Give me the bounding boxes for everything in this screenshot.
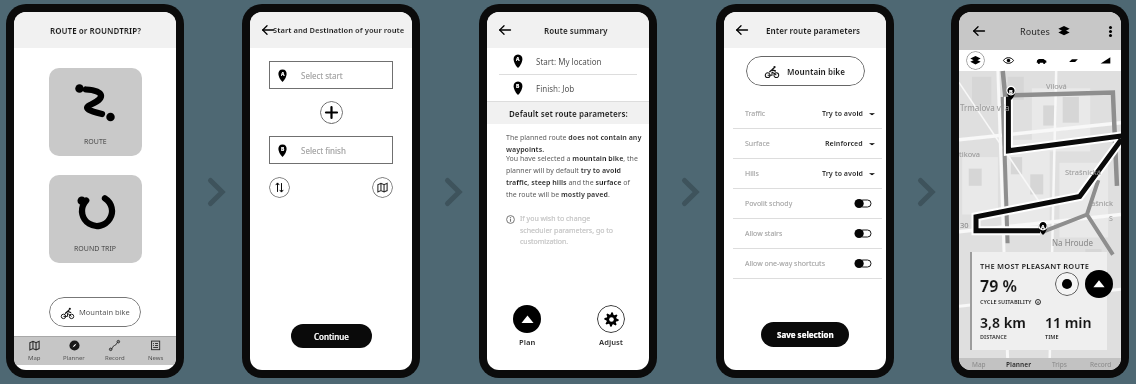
staticText: Start: My location — [536, 56, 602, 67]
button[interactable]: Swap start and finish — [269, 177, 290, 198]
staticText: Mountain bike — [787, 66, 846, 77]
staticText: Select finish — [301, 145, 346, 156]
button[interactable]: Map — [14, 337, 54, 365]
staticText: Trips — [1052, 360, 1067, 369]
staticText: If you wish to change scheduler paramete… — [520, 214, 617, 246]
button[interactable]: Traffic — [724, 99, 886, 128]
staticText: Allow one-way shortcuts — [745, 259, 825, 269]
staticText: Route summary — [544, 25, 608, 36]
staticText: Strašnická — [1065, 167, 1101, 177]
staticText: Trmalova vila — [960, 102, 1010, 113]
staticText: Hills — [745, 169, 759, 179]
staticText: Default set route parameters: — [509, 108, 628, 119]
staticText: ROUTE or ROUNDTRIP? — [50, 25, 141, 36]
staticText: News — [148, 354, 164, 362]
staticText: Planner — [63, 354, 85, 362]
staticText: Try to avoid — [822, 109, 863, 119]
staticText: Adjust — [599, 337, 624, 347]
staticText: A — [1041, 223, 1045, 230]
button[interactable]: A — [487, 48, 649, 74]
button[interactable]: ROUTE — [49, 68, 142, 156]
button[interactable]: Traffic — [1025, 50, 1057, 71]
button[interactable]: Surface — [724, 129, 886, 158]
staticText: Save selection — [777, 329, 834, 340]
staticText: CYCLE SUITABILITY — [980, 298, 1032, 305]
button[interactable]: Allow one-way shortcuts — [724, 249, 886, 278]
staticText: ROUTE — [84, 137, 107, 147]
staticText: B — [281, 146, 285, 153]
staticText: Povolit schody — [745, 199, 793, 209]
staticText: Surface — [745, 139, 770, 149]
staticText: Plan — [519, 337, 536, 347]
button[interactable]: Planner — [999, 358, 1039, 370]
staticText: Allow stairs — [745, 229, 783, 239]
staticText: 30 — [960, 220, 969, 230]
staticText: Record — [105, 354, 125, 362]
button[interactable]: Trips — [1039, 358, 1080, 370]
button[interactable]: Pick on map — [372, 177, 393, 198]
staticText: B — [516, 83, 520, 90]
button[interactable]: Continue — [291, 324, 372, 348]
staticText: Mountain bike — [79, 307, 130, 317]
button[interactable]: Povolit schody — [724, 189, 886, 218]
button[interactable]: Back — [260, 22, 276, 38]
button[interactable]: Navigate — [1085, 270, 1113, 298]
staticText: A — [281, 71, 285, 78]
button[interactable]: ROUND TRIP — [49, 175, 142, 263]
button[interactable]: Visibility — [992, 50, 1025, 71]
button[interactable]: Route details — [1055, 272, 1079, 296]
button[interactable]: Elevation — [1089, 50, 1121, 71]
staticText: S — [1109, 214, 1113, 224]
button[interactable]: Adjust — [597, 305, 625, 347]
staticText: 3,8 km — [980, 313, 1026, 332]
staticText: Record — [1090, 360, 1112, 369]
button[interactable]: Record — [94, 337, 135, 365]
button[interactable]: B — [269, 136, 393, 164]
staticText: B — [1009, 88, 1013, 95]
button[interactable]: Back — [971, 23, 987, 39]
button[interactable]: Plan — [513, 305, 541, 347]
staticText: Finish: Job — [536, 83, 575, 94]
staticText: Try to avoid — [822, 169, 863, 179]
staticText: Na Hroude — [1052, 237, 1093, 248]
button[interactable]: Planner — [54, 337, 94, 365]
button[interactable]: Record — [1080, 358, 1121, 370]
staticText: Map — [972, 360, 986, 369]
button[interactable]: Mountain bike — [49, 297, 141, 327]
staticText: THE MOST PLEASANT ROUTE — [980, 261, 1090, 271]
button[interactable]: B — [487, 75, 649, 101]
staticText: Planner — [1006, 360, 1032, 369]
staticText: Vilová — [1046, 81, 1067, 91]
staticText: tikova — [959, 149, 981, 159]
staticText: ROUND TRIP — [74, 244, 117, 254]
staticText: A — [516, 56, 520, 63]
button[interactable]: Save selection — [761, 322, 849, 347]
button[interactable]: Back — [497, 22, 513, 38]
button[interactable]: A — [269, 61, 393, 89]
staticText: Enter route parameters — [766, 25, 860, 36]
staticText: Map — [28, 354, 41, 362]
staticText: 11 min — [1045, 313, 1092, 332]
button[interactable]: Add waypoint — [320, 101, 343, 124]
button[interactable]: Layers — [959, 50, 992, 71]
staticText: TIME — [1045, 333, 1059, 340]
staticText: Start and Destination of your route — [273, 25, 405, 35]
staticText: Continue — [314, 331, 349, 342]
button[interactable]: Map — [959, 358, 999, 370]
staticText: The planned route does not contain any w… — [506, 133, 642, 154]
staticText: Reinforced — [825, 139, 863, 149]
staticText: Routes — [1020, 25, 1050, 37]
button[interactable]: Hills — [724, 159, 886, 188]
button[interactable]: News — [135, 337, 176, 365]
staticText: 79 % — [980, 275, 1017, 297]
staticText: Select start — [301, 70, 343, 81]
staticText: Traffic — [745, 109, 766, 119]
staticText: ašnick — [1091, 198, 1113, 208]
button[interactable]: More options — [1104, 25, 1116, 37]
staticText: DISTANCE — [980, 333, 1007, 340]
button[interactable]: Mountain bike — [746, 56, 865, 86]
button[interactable]: Surface — [1057, 50, 1089, 71]
staticText: You have selected a mountain bike, the p… — [506, 154, 642, 199]
button[interactable]: Back — [734, 22, 750, 38]
button[interactable]: Allow stairs — [724, 219, 886, 248]
